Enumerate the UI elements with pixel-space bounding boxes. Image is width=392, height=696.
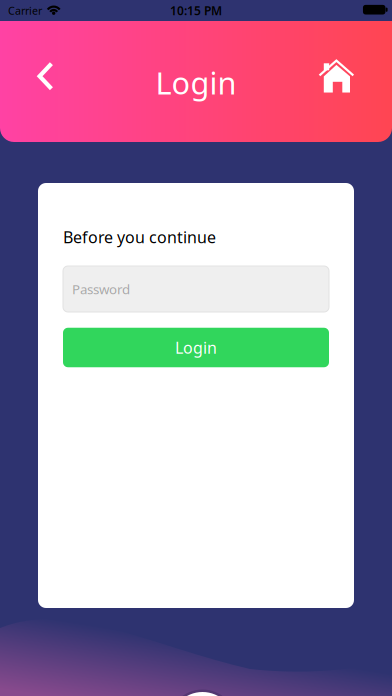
staticText: Login bbox=[175, 337, 217, 358]
staticText: Carrier bbox=[8, 3, 42, 18]
staticText: Before you continue bbox=[63, 226, 216, 248]
staticText: Password bbox=[72, 280, 130, 298]
staticText: Login bbox=[155, 62, 236, 103]
staticText: 10:15 PM bbox=[170, 2, 222, 18]
button[interactable] bbox=[39, 61, 54, 91]
button[interactable]: Password bbox=[63, 266, 329, 312]
button[interactable] bbox=[318, 59, 354, 94]
button[interactable]: Login bbox=[63, 328, 329, 367]
